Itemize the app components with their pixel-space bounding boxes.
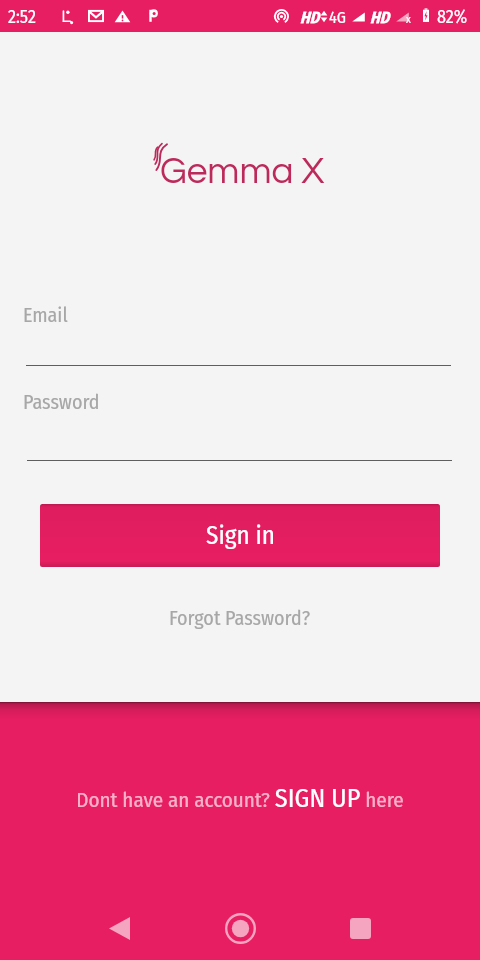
staticText: Forgot Password? [169, 606, 311, 630]
staticText: 82% [437, 6, 468, 28]
button[interactable]: Dont have an account? SIGN UP here [76, 783, 404, 814]
staticText: Sign in [206, 521, 275, 551]
staticText: x [406, 13, 411, 26]
button[interactable]: Recent apps [336, 904, 384, 952]
staticText: Dont have an account? SIGN UP here [76, 783, 404, 814]
staticText: 2:52 [8, 6, 36, 28]
staticText: HD [370, 8, 390, 27]
button[interactable]: Back [95, 904, 143, 952]
button[interactable]: Sign in [40, 504, 440, 567]
button[interactable]: Forgot Password? [169, 606, 311, 630]
button[interactable]: Password [23, 385, 452, 461]
staticText: Email [23, 303, 68, 327]
button[interactable]: Home [216, 904, 264, 952]
staticText: Gemma X [160, 153, 325, 191]
staticText: 4G [329, 8, 346, 27]
button[interactable]: Email [23, 298, 452, 366]
staticText: HD [300, 8, 320, 27]
staticText: Password [23, 390, 100, 414]
